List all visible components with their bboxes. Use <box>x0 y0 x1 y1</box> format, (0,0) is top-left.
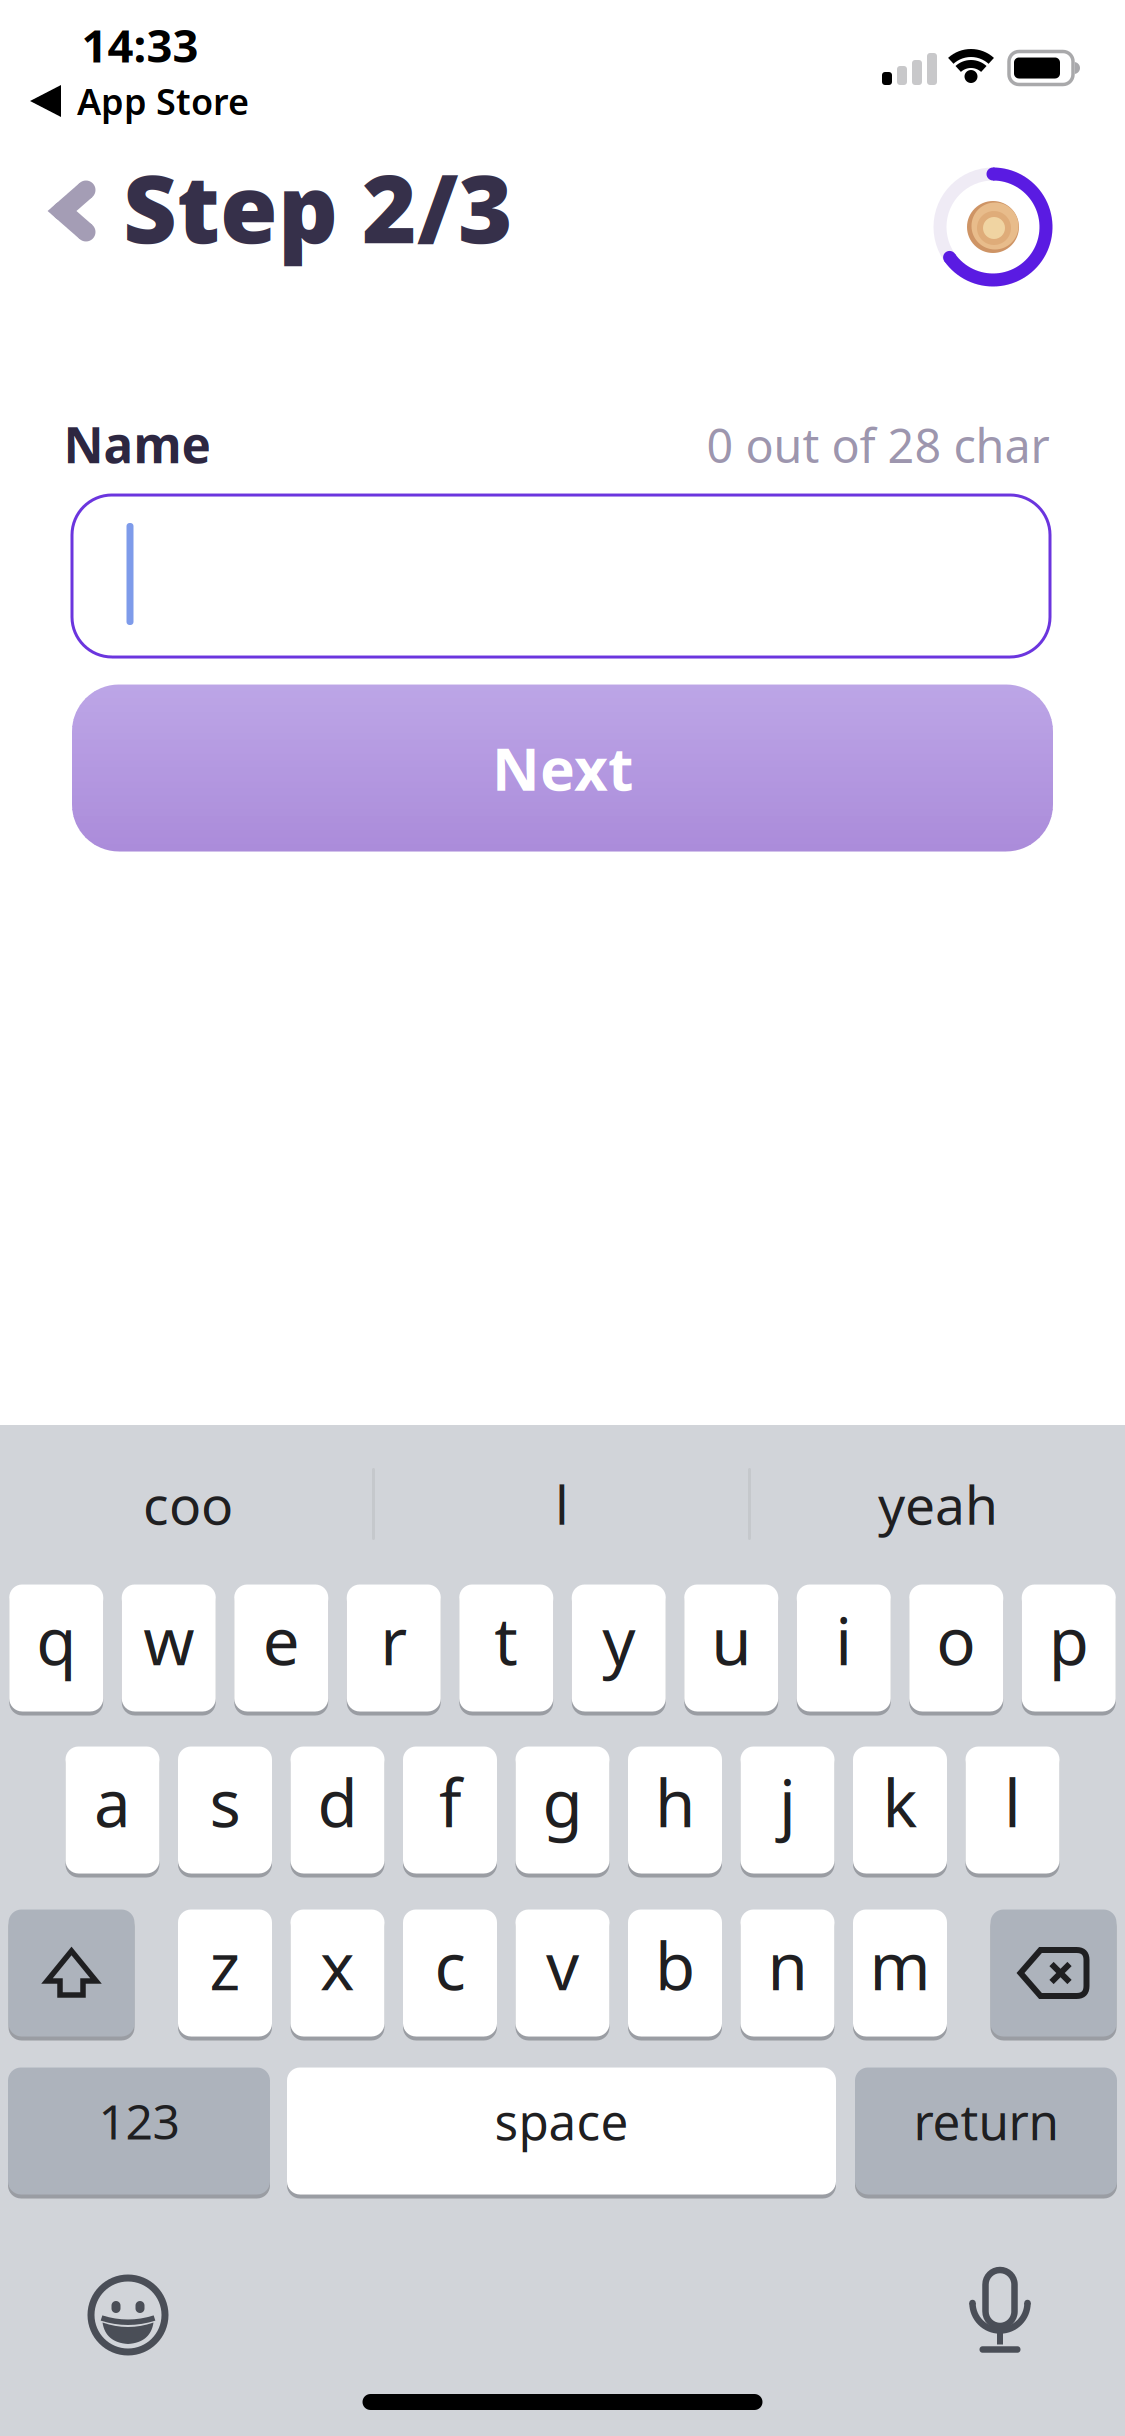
staticText: App Store <box>77 77 249 125</box>
staticText: s <box>209 1759 240 1845</box>
button[interactable]: Back <box>44 171 104 251</box>
button[interactable]: Shift <box>8 1909 134 2036</box>
button[interactable]: g <box>515 1746 609 1873</box>
staticText: m <box>869 1922 930 2008</box>
staticText: p <box>1049 1597 1089 1683</box>
button[interactable]: p <box>1022 1584 1116 1711</box>
staticText: i <box>835 1597 852 1683</box>
staticText: h <box>655 1759 695 1845</box>
button[interactable]: Emoji <box>87 2274 168 2355</box>
staticText: e <box>263 1597 300 1683</box>
button[interactable]: k <box>853 1746 947 1873</box>
button[interactable]: yeah <box>760 1444 1116 1564</box>
button[interactable]: return <box>855 2067 1117 2194</box>
button[interactable]: Next <box>72 684 1053 851</box>
staticText: t <box>494 1597 518 1683</box>
staticText: q <box>36 1597 76 1683</box>
staticText: yeah <box>878 1469 998 1539</box>
button[interactable]: space <box>287 2067 836 2194</box>
button[interactable]: o <box>909 1584 1003 1711</box>
button[interactable]: Dictate <box>970 2266 1030 2358</box>
staticText: g <box>542 1759 582 1845</box>
button[interactable]: m <box>853 1909 947 2036</box>
button[interactable]: Delete <box>990 1909 1116 2036</box>
button[interactable]: t <box>459 1584 553 1711</box>
button[interactable]: d <box>290 1746 384 1873</box>
button[interactable]: j <box>740 1746 834 1873</box>
staticText: Step 2/3 <box>123 145 513 269</box>
button[interactable]: q <box>9 1584 103 1711</box>
staticText: k <box>882 1759 917 1845</box>
staticText: w <box>143 1597 194 1683</box>
staticText: o <box>936 1597 976 1683</box>
staticText: r <box>380 1597 407 1683</box>
button[interactable]: e <box>234 1584 328 1711</box>
staticText: f <box>439 1759 461 1845</box>
staticText: space <box>494 2088 628 2154</box>
button[interactable]: s <box>178 1746 272 1873</box>
button[interactable]: i <box>797 1584 891 1711</box>
staticText: l <box>1004 1759 1021 1845</box>
staticText: a <box>94 1759 131 1845</box>
staticText: b <box>655 1922 695 2008</box>
staticText: coo <box>143 1469 233 1539</box>
button[interactable]: z <box>178 1909 272 2036</box>
staticText: v <box>546 1922 579 2008</box>
staticText: u <box>711 1597 751 1683</box>
button[interactable]: f <box>403 1746 497 1873</box>
button[interactable]: l <box>965 1746 1059 1873</box>
button[interactable]: w <box>122 1584 216 1711</box>
staticText: return <box>913 2088 1058 2154</box>
staticText: n <box>767 1922 807 2008</box>
staticText: y <box>602 1597 635 1683</box>
staticText: z <box>209 1922 240 2008</box>
button[interactable]: coo <box>10 1444 366 1564</box>
button[interactable]: r <box>347 1584 441 1711</box>
button[interactable]: u <box>684 1584 778 1711</box>
staticText: 0 out of 28 char <box>706 414 1049 476</box>
staticText: Next <box>492 729 633 807</box>
button[interactable]: App Store <box>0 0 1125 2436</box>
button[interactable]: n <box>740 1909 834 2036</box>
staticText: d <box>317 1759 357 1845</box>
staticText: 123 <box>98 2089 179 2153</box>
staticText: 14:33 <box>81 15 198 75</box>
button[interactable]: h <box>628 1746 722 1873</box>
staticText: l <box>555 1469 569 1539</box>
button[interactable]: b <box>628 1909 722 2036</box>
button[interactable]: x <box>290 1909 384 2036</box>
button[interactable]: v <box>515 1909 609 2036</box>
button[interactable]: l <box>384 1444 740 1564</box>
button[interactable]: a <box>65 1746 159 1873</box>
button[interactable]: Numbers <box>8 2067 270 2194</box>
staticText: j <box>779 1759 796 1845</box>
button[interactable]: y <box>572 1584 666 1711</box>
staticText: c <box>434 1922 465 2008</box>
staticText: Name <box>63 411 210 477</box>
button[interactable]: c <box>403 1909 497 2036</box>
staticText: x <box>320 1922 355 2008</box>
